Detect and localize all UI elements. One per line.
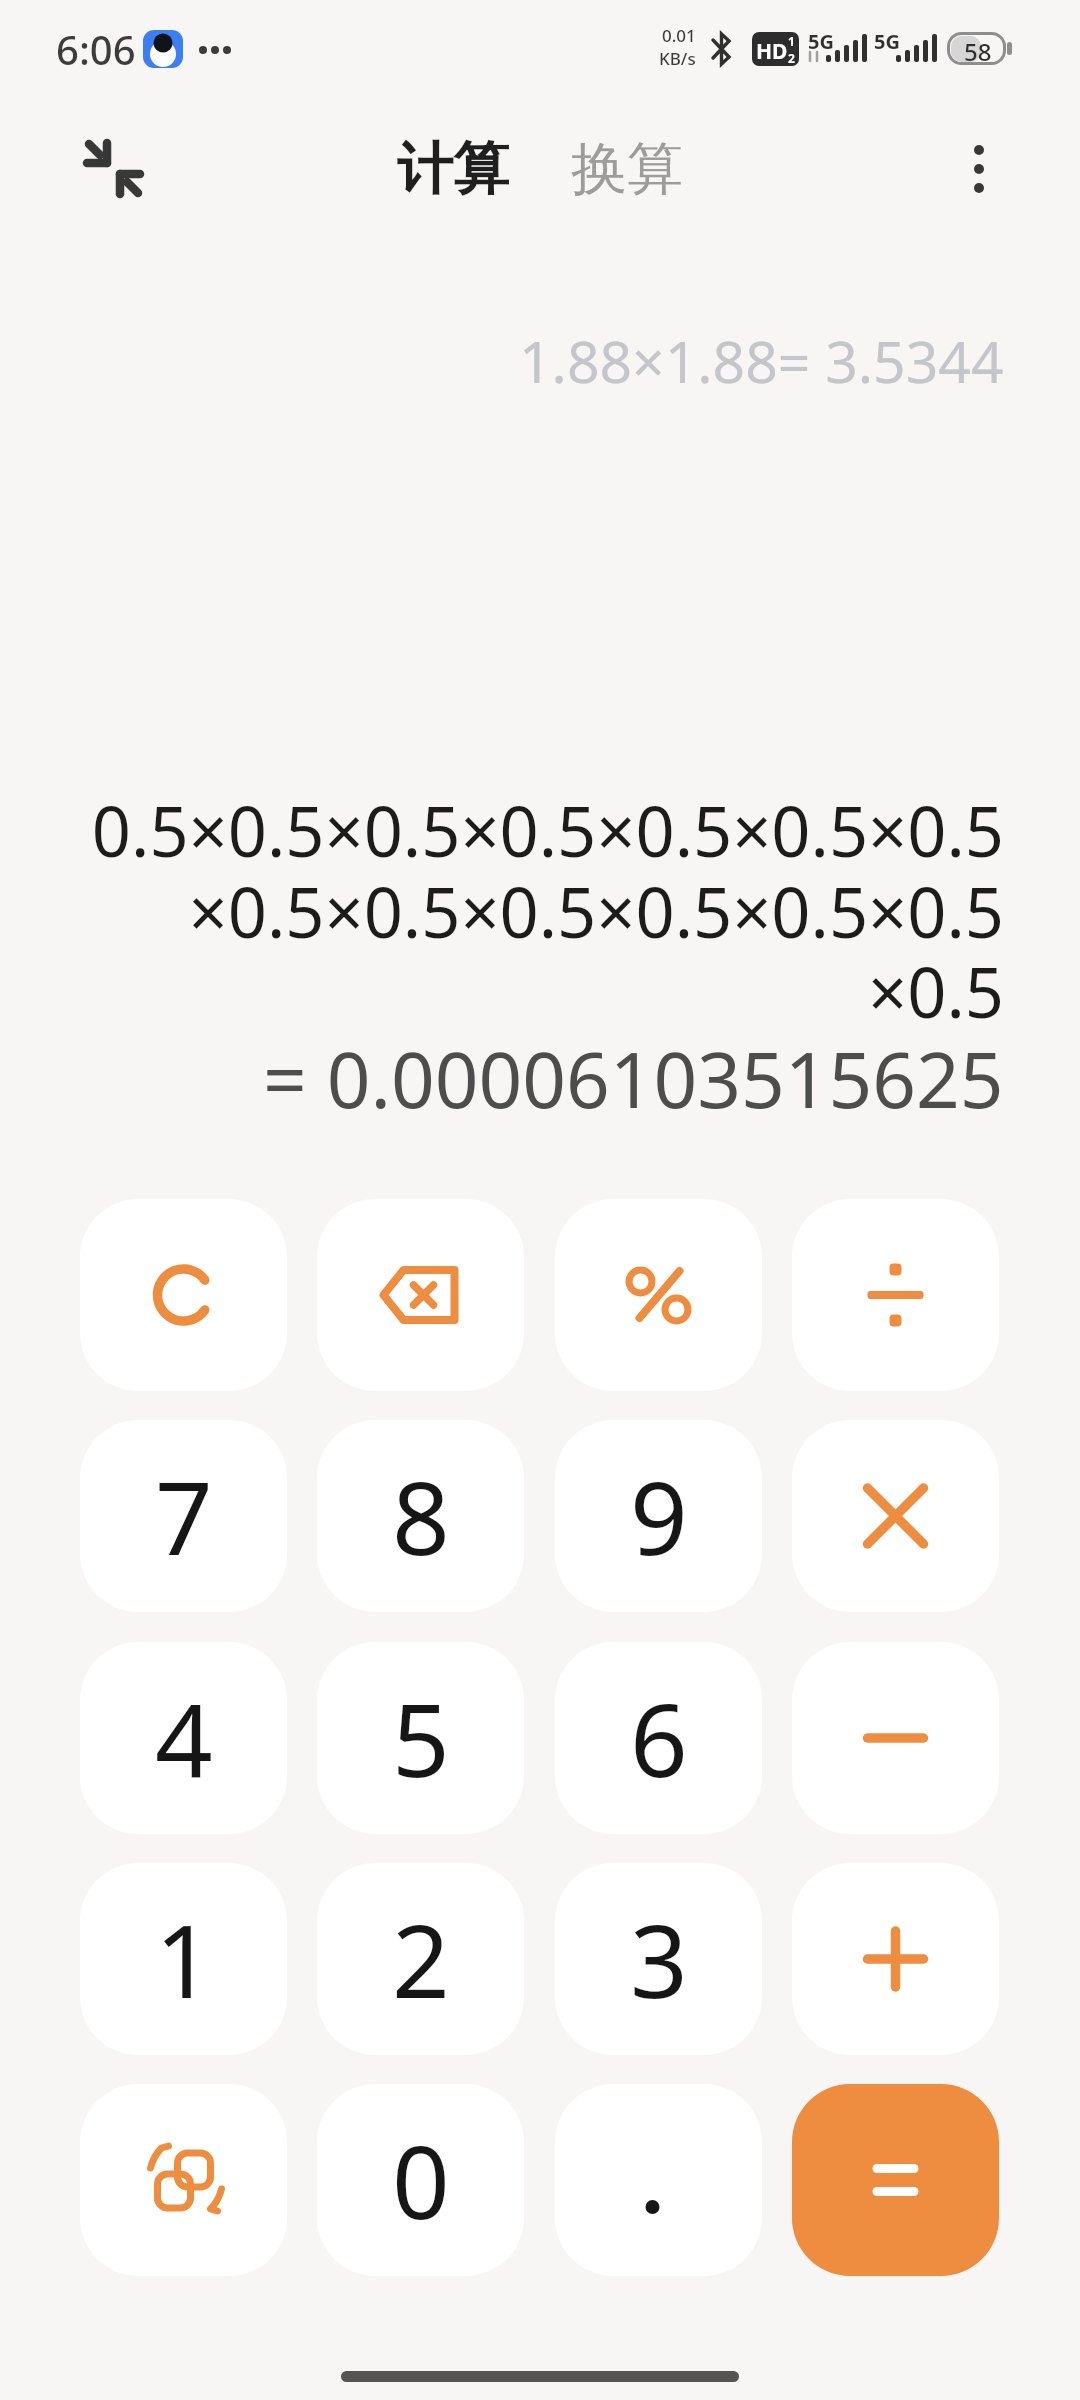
button[interactable]: 换算 bbox=[571, 134, 683, 205]
staticText: 计算 bbox=[397, 134, 509, 205]
staticText: 58 bbox=[964, 35, 992, 68]
staticText: 4 bbox=[155, 1669, 213, 1807]
button[interactable]: 2 bbox=[317, 1863, 524, 2055]
button[interactable] bbox=[555, 1199, 762, 1391]
button[interactable] bbox=[70, 126, 160, 216]
button[interactable] bbox=[80, 2084, 287, 2276]
button[interactable]: 9 bbox=[555, 1420, 762, 1612]
staticText: 6:06 bbox=[56, 22, 136, 76]
button[interactable]: 4 bbox=[80, 1642, 287, 1834]
staticText: 2 bbox=[392, 1890, 450, 2028]
staticText: KB/s bbox=[659, 47, 696, 70]
staticText: 0.01 bbox=[662, 24, 696, 47]
staticText: 6 bbox=[630, 1669, 688, 1807]
staticText: 0 bbox=[392, 2111, 450, 2249]
staticText: 1.88×1.88= 3.5344 bbox=[519, 322, 1004, 400]
button[interactable]: 1 bbox=[80, 1863, 287, 2055]
staticText: HD bbox=[756, 37, 788, 66]
button[interactable]: 计算 bbox=[397, 134, 509, 205]
button[interactable]: 7 bbox=[80, 1420, 287, 1612]
button[interactable] bbox=[792, 1863, 999, 2055]
button[interactable]: 6 bbox=[555, 1642, 762, 1834]
button[interactable]: 5 bbox=[317, 1642, 524, 1834]
staticText: 2 bbox=[788, 50, 795, 66]
button[interactable] bbox=[792, 1420, 999, 1612]
staticText: 8 bbox=[392, 1447, 450, 1585]
staticText: 5 bbox=[392, 1669, 450, 1807]
button[interactable]: 0 bbox=[317, 2084, 524, 2276]
button[interactable] bbox=[80, 1199, 287, 1391]
button[interactable] bbox=[792, 2084, 999, 2276]
button[interactable]: 3 bbox=[555, 1863, 762, 2055]
button[interactable] bbox=[944, 132, 1014, 208]
staticText: 0.5×0.5×0.5×0.5×0.5×0.5×0.5 ×0.5×0.5×0.5… bbox=[91, 784, 1004, 1038]
button[interactable] bbox=[792, 1642, 999, 1834]
staticText: 1 bbox=[155, 1890, 213, 2028]
staticText: 1 bbox=[788, 33, 795, 49]
staticText: 换算 bbox=[571, 134, 683, 205]
staticText: 5G bbox=[808, 28, 834, 55]
staticText: 3 bbox=[630, 1890, 688, 2028]
button[interactable] bbox=[317, 1199, 524, 1391]
staticText: 7 bbox=[155, 1447, 213, 1585]
staticText: 9 bbox=[630, 1447, 688, 1585]
button[interactable]: 8 bbox=[317, 1420, 524, 1612]
button[interactable] bbox=[555, 2084, 762, 2276]
staticText: 5G bbox=[874, 28, 900, 55]
staticText: = 0.00006103515625 bbox=[263, 1026, 1004, 1130]
button[interactable] bbox=[792, 1199, 999, 1391]
